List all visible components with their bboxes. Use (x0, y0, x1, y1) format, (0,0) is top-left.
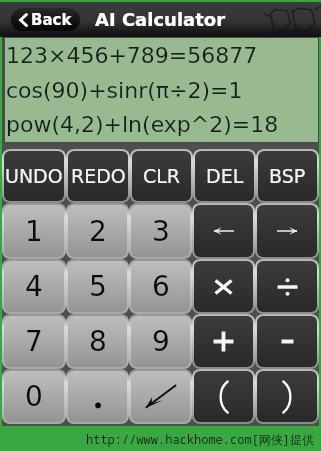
button[interactable]: CLR (132, 151, 191, 201)
button[interactable]: 8 (68, 316, 127, 367)
staticText: 6 (152, 270, 170, 303)
button[interactable]: Divide (257, 261, 317, 312)
button[interactable]: 7 (4, 316, 64, 367)
button[interactable]: Multiply (194, 261, 253, 312)
button[interactable]: Open bracket (194, 371, 253, 422)
button[interactable]: UNDO (4, 151, 64, 201)
button[interactable]: Move left (194, 205, 253, 257)
staticText: UNDO (5, 165, 63, 187)
button[interactable]: DEL (195, 151, 254, 201)
staticText: 3 (152, 215, 170, 248)
button[interactable]: BSP (258, 151, 317, 201)
button[interactable]: REDO (68, 151, 128, 201)
button[interactable]: Minus (257, 316, 317, 367)
staticText: AI Calculator (95, 9, 226, 30)
button[interactable]: Plus (194, 316, 253, 367)
button[interactable]: 6 (131, 261, 190, 312)
staticText: 0 (25, 380, 43, 413)
button[interactable]: Answer (131, 371, 190, 422)
staticText: 4 (25, 270, 43, 303)
button[interactable]: 1 (4, 205, 64, 257)
staticText: CLR (143, 165, 181, 187)
staticText: DEL (206, 165, 244, 187)
staticText: 123×456+789=56877 (6, 43, 258, 69)
button[interactable]: 0 (4, 371, 64, 422)
button[interactable]: 2 (68, 205, 127, 257)
button[interactable]: Move right (257, 205, 317, 257)
staticText: REDO (71, 165, 126, 187)
staticText: cos(90)+sinr(π÷2)=1 (6, 78, 243, 104)
staticText: 9 (152, 325, 170, 358)
staticText: 1 (25, 215, 43, 248)
staticText: pow(4,2)+ln(exp^2)=18 (6, 112, 279, 138)
button[interactable]: Back (11, 8, 80, 31)
button[interactable] (68, 371, 127, 422)
button[interactable]: Close bracket (257, 371, 317, 422)
button[interactable]: 5 (68, 261, 127, 312)
staticText: 5 (89, 270, 107, 303)
staticText: 8 (89, 325, 107, 358)
button[interactable]: 4 (4, 261, 64, 312)
staticText: 2 (89, 215, 107, 248)
staticText: BSP (269, 165, 306, 187)
staticText: 7 (25, 325, 43, 358)
staticText: Back (31, 11, 72, 28)
staticText: http://www.hackhome.com[网侠]提供 (86, 431, 315, 447)
button[interactable]: 3 (131, 205, 190, 257)
button[interactable]: 9 (131, 316, 190, 367)
